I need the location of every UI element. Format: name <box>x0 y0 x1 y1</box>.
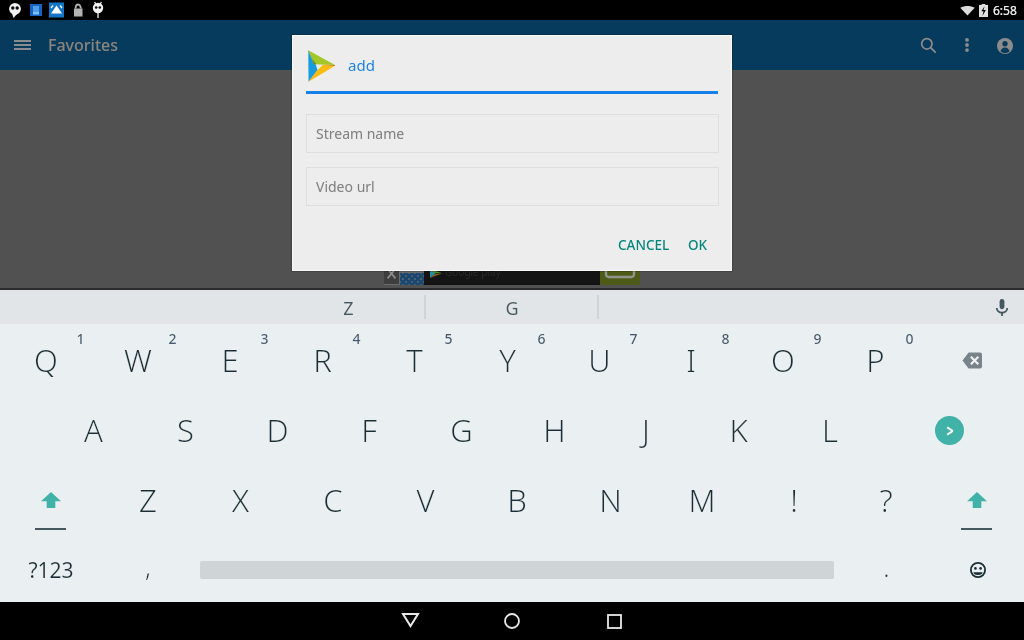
button[interactable]: G <box>467 291 557 325</box>
staticText: , <box>145 549 151 584</box>
button[interactable]: A <box>47 402 139 458</box>
button[interactable]: 5 <box>402 310 494 366</box>
button[interactable]: 8 <box>679 310 771 366</box>
staticText: Z <box>139 479 157 521</box>
button[interactable]: Voice input <box>988 293 1016 321</box>
staticText: 0 <box>905 329 914 348</box>
staticText: A <box>84 409 103 451</box>
button[interactable]: H <box>508 402 600 458</box>
staticText: Google play <box>445 265 501 279</box>
button[interactable]: N <box>564 472 656 528</box>
button[interactable]: Recent apps <box>590 602 638 640</box>
button[interactable]: L <box>784 402 876 458</box>
staticText: ?123 <box>28 556 74 585</box>
button[interactable]: More options <box>944 22 990 68</box>
staticText: OK <box>688 236 708 254</box>
button[interactable]: S <box>139 402 231 458</box>
staticText: S <box>177 409 194 451</box>
button[interactable]: Home <box>488 602 536 640</box>
button[interactable]: CANCEL <box>607 226 681 264</box>
staticText: Y <box>499 339 516 381</box>
button[interactable]: ? <box>840 472 932 528</box>
button[interactable]: Advertisement <box>384 255 640 285</box>
button[interactable]: 9 <box>771 310 863 366</box>
button[interactable]: ?123 <box>5 542 97 598</box>
staticText: U <box>588 339 611 381</box>
staticText: I <box>686 339 696 381</box>
button[interactable]: 6 <box>495 310 587 366</box>
button[interactable]: . <box>840 538 932 594</box>
button[interactable]: V <box>379 472 471 528</box>
button[interactable]: ! <box>748 472 840 528</box>
staticText: N <box>599 479 622 521</box>
button[interactable]: , <box>102 538 194 594</box>
staticText: 4 <box>352 329 361 348</box>
button[interactable]: R <box>276 332 368 388</box>
staticText: K <box>729 409 748 451</box>
button[interactable]: Shift <box>931 472 1023 528</box>
button[interactable]: 4 <box>310 310 402 366</box>
button[interactable]: Stream name <box>306 114 719 153</box>
staticText: B <box>507 479 527 521</box>
button[interactable]: 1 <box>34 310 126 366</box>
staticText: 8 <box>721 329 730 348</box>
staticText: P <box>866 339 885 381</box>
button[interactable]: 0 <box>863 310 955 366</box>
staticText: Z <box>343 296 354 321</box>
staticText: Video url <box>316 177 375 196</box>
staticText: Stream name <box>316 124 405 143</box>
button[interactable]: OK <box>681 226 715 264</box>
button[interactable]: Video url <box>306 167 719 206</box>
button[interactable]: M <box>656 472 748 528</box>
button[interactable]: B <box>471 472 563 528</box>
button[interactable]: E <box>184 332 276 388</box>
button[interactable]: Shift <box>5 472 97 528</box>
button[interactable]: U <box>553 332 645 388</box>
button[interactable]: I <box>645 332 737 388</box>
button[interactable]: Z <box>102 472 194 528</box>
button[interactable]: T <box>368 332 460 388</box>
staticText: 5 <box>444 329 453 348</box>
staticText: T <box>406 339 423 381</box>
button[interactable]: Navigation menu <box>0 22 45 68</box>
staticText: M <box>688 479 716 521</box>
staticText: X <box>232 479 249 521</box>
staticText: L <box>822 409 838 451</box>
button[interactable]: G <box>415 402 507 458</box>
button[interactable]: X <box>194 472 286 528</box>
button[interactable]: Account <box>982 22 1024 68</box>
button[interactable]: Search <box>905 22 951 68</box>
button[interactable]: J <box>600 402 692 458</box>
staticText: Q <box>34 339 58 381</box>
button[interactable]: K <box>692 402 784 458</box>
staticText: H <box>543 409 566 451</box>
button[interactable]: F <box>323 402 415 458</box>
button[interactable]: Z <box>303 291 393 325</box>
staticText: CANCEL <box>618 236 670 254</box>
staticText: ! <box>790 479 798 521</box>
button[interactable]: Backspace <box>926 332 1018 388</box>
staticText: D <box>266 409 289 451</box>
staticText: J <box>642 409 650 451</box>
button[interactable]: Y <box>461 332 553 388</box>
staticText: ? <box>879 479 893 521</box>
button[interactable]: Emoji <box>932 542 1024 598</box>
button[interactable]: D <box>231 402 323 458</box>
button[interactable]: Enter <box>903 402 995 458</box>
button[interactable]: W <box>92 332 184 388</box>
staticText: G <box>450 409 473 451</box>
button[interactable]: Back <box>386 602 434 640</box>
staticText: V <box>416 479 435 521</box>
staticText: Favorites <box>48 34 118 56</box>
button[interactable]: C <box>287 472 379 528</box>
button[interactable]: P <box>829 332 921 388</box>
button[interactable]: O <box>737 332 829 388</box>
staticText: . <box>883 549 890 584</box>
button[interactable]: 7 <box>587 310 679 366</box>
staticText: R <box>313 339 332 381</box>
staticText: 6:58 <box>993 2 1017 18</box>
button[interactable]: 2 <box>126 310 218 366</box>
button[interactable]: 3 <box>218 310 310 366</box>
button[interactable]: Q <box>0 332 92 388</box>
